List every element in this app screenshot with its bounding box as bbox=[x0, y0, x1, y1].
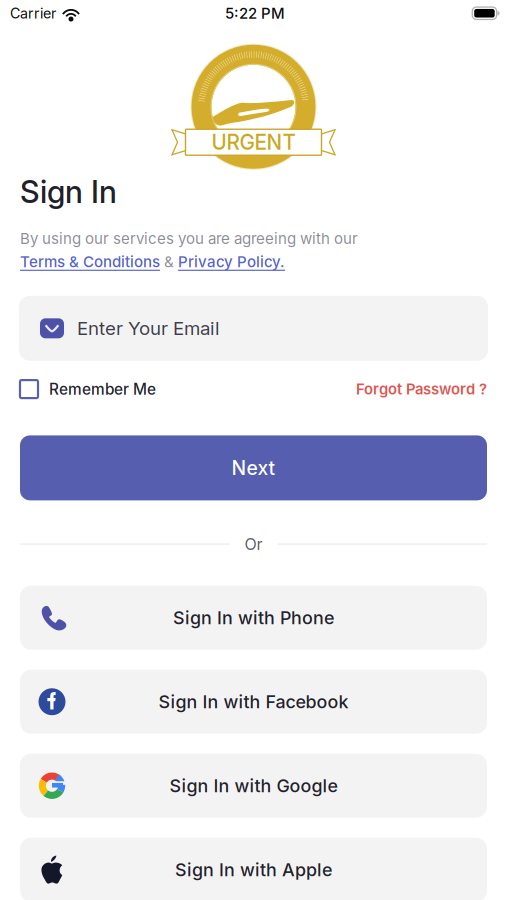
button[interactable]: Remember Me bbox=[20, 380, 156, 398]
button[interactable]: Next bbox=[20, 435, 487, 500]
staticText: Sign In bbox=[20, 173, 117, 210]
button[interactable]: Privacy Policy. bbox=[178, 253, 285, 271]
staticText: & bbox=[160, 253, 178, 271]
staticText: Sign In with Phone bbox=[173, 607, 334, 628]
button[interactable]: Forgot Password ? bbox=[356, 380, 487, 398]
staticText: Sign In with Facebook bbox=[158, 691, 348, 712]
staticText: Terms & Conditions bbox=[20, 253, 160, 271]
staticText: Carrier bbox=[10, 5, 56, 22]
button[interactable]: Sign In with Apple bbox=[20, 838, 487, 900]
staticText: Sign In with Google bbox=[169, 775, 337, 796]
button[interactable]: Enter Your Email bbox=[19, 296, 488, 361]
button[interactable]: Sign In with Phone bbox=[20, 586, 487, 650]
staticText: By using our services you are agreeing w… bbox=[20, 229, 358, 248]
staticText: Enter Your Email bbox=[77, 317, 220, 340]
button[interactable]: Terms & Conditions bbox=[20, 253, 160, 271]
staticText: 5:22 PM bbox=[225, 4, 285, 22]
staticText: Privacy Policy. bbox=[178, 253, 285, 271]
staticText: Forgot Password ? bbox=[356, 380, 487, 398]
staticText: Sign In with Apple bbox=[175, 859, 332, 880]
staticText: Or bbox=[244, 534, 262, 554]
button[interactable]: Sign In with Facebook bbox=[20, 670, 487, 734]
staticText: Remember Me bbox=[49, 380, 156, 398]
staticText: Next bbox=[231, 456, 275, 480]
staticText: URGENT bbox=[211, 130, 295, 155]
button[interactable]: Sign In with Google bbox=[20, 754, 487, 818]
